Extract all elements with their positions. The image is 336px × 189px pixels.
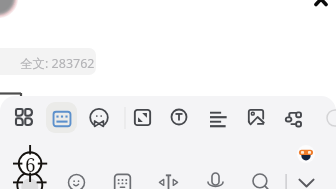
button[interactable]: Share xyxy=(279,104,307,132)
button[interactable]: Voice input xyxy=(202,167,229,189)
button[interactable]: Resize xyxy=(128,103,157,132)
button[interactable]: Apps xyxy=(10,103,38,131)
button[interactable]: Sticker xyxy=(62,168,91,189)
staticText: 全文: 283762 xyxy=(20,55,95,72)
button[interactable]: Move cursor xyxy=(153,168,184,189)
button[interactable]: Emoji stickers xyxy=(82,102,116,136)
button[interactable]: Hide keyboard xyxy=(293,173,320,189)
button[interactable]: Keyboard xyxy=(47,104,77,134)
staticText: 6 xyxy=(25,152,36,178)
button[interactable]: Image xyxy=(242,103,270,131)
button[interactable]: Numbers xyxy=(108,168,137,189)
button[interactable]: Align text xyxy=(204,105,233,134)
button[interactable]: Text style xyxy=(165,103,193,131)
button[interactable]: Search xyxy=(247,168,274,189)
button[interactable]: Collapse xyxy=(308,0,334,15)
